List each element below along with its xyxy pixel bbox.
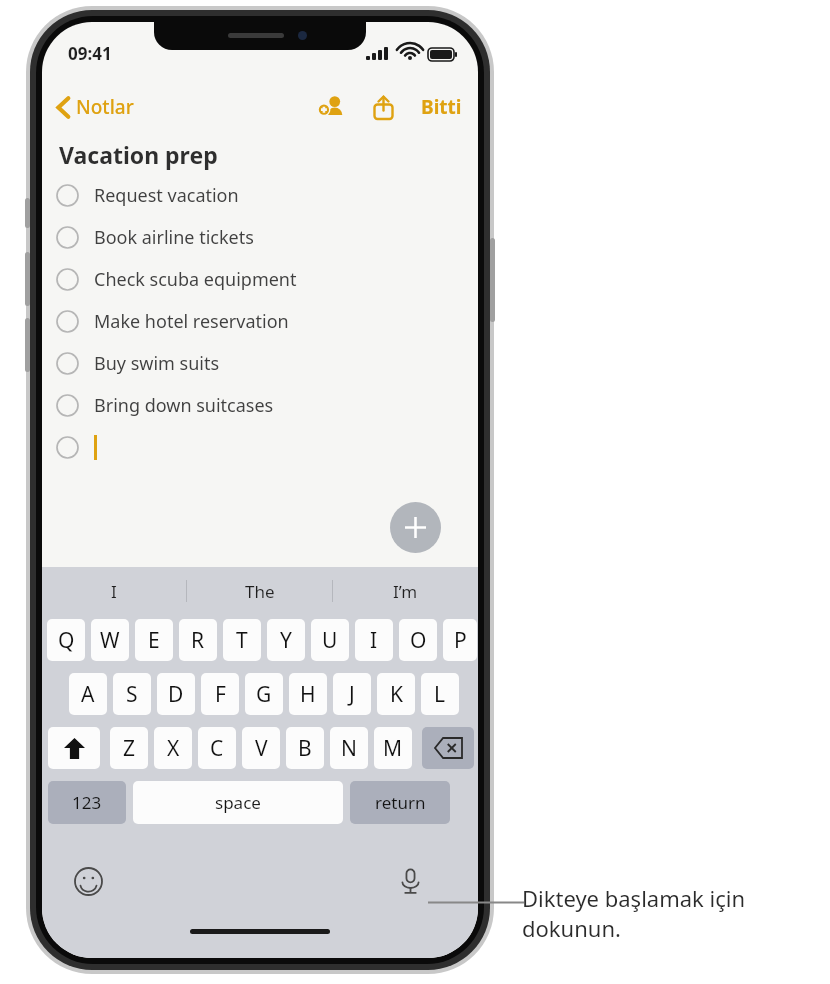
button[interactable]: Z — [110, 727, 148, 769]
staticText: The — [245, 580, 275, 603]
staticText: B — [298, 734, 312, 763]
button[interactable]: F — [201, 673, 239, 715]
button[interactable]: K — [377, 673, 415, 715]
staticText: space — [215, 791, 261, 814]
button[interactable]: Emoji — [68, 861, 108, 901]
button[interactable]: Add people — [309, 86, 353, 128]
staticText: M — [383, 734, 403, 763]
staticText: V — [255, 734, 268, 763]
button[interactable]: Dictation — [390, 861, 430, 901]
button[interactable]: M — [374, 727, 412, 769]
button[interactable]: G — [245, 673, 283, 715]
staticText: C — [210, 734, 224, 763]
staticText: Q — [58, 626, 75, 655]
staticText: X — [167, 734, 180, 763]
button[interactable]: P — [443, 619, 477, 661]
staticText: Request vacation — [94, 183, 239, 208]
button[interactable]: B — [286, 727, 324, 769]
button[interactable]: Book airline tickets — [56, 216, 478, 258]
staticText: 123 — [72, 791, 102, 814]
staticText: S — [126, 680, 138, 709]
button[interactable]: Delete — [422, 727, 474, 769]
staticText: J — [349, 680, 355, 709]
staticText: U — [322, 626, 338, 655]
button[interactable] — [56, 426, 97, 468]
button[interactable]: R — [179, 619, 217, 661]
staticText: R — [191, 626, 205, 655]
button[interactable]: Notlar — [56, 94, 134, 120]
button[interactable]: I’m — [333, 567, 478, 615]
button[interactable]: U — [311, 619, 349, 661]
button[interactable]: C — [198, 727, 236, 769]
staticText: L — [434, 680, 446, 709]
button[interactable]: The — [187, 567, 332, 615]
button[interactable]: S — [113, 673, 151, 715]
staticText: F — [215, 680, 226, 709]
button[interactable]: V — [242, 727, 280, 769]
button[interactable]: O — [399, 619, 437, 661]
staticText: Y — [280, 626, 292, 655]
button[interactable]: space — [133, 781, 343, 824]
staticText: I’m — [393, 580, 418, 603]
staticText: Book airline tickets — [94, 225, 254, 250]
button[interactable]: return — [350, 781, 450, 824]
staticText: A — [81, 680, 95, 709]
staticText: N — [341, 734, 357, 763]
button[interactable]: Request vacation — [56, 174, 478, 216]
button[interactable]: X — [154, 727, 192, 769]
staticText: G — [256, 680, 272, 709]
button[interactable]: E — [135, 619, 173, 661]
staticText: D — [168, 680, 184, 709]
staticText: Bring down suitcases — [94, 393, 274, 418]
staticText: O — [410, 626, 427, 655]
staticText: P — [454, 626, 467, 655]
button[interactable]: T — [223, 619, 261, 661]
staticText: Check scuba equipment — [94, 267, 297, 292]
button[interactable]: J — [333, 673, 371, 715]
button[interactable]: Add — [390, 502, 441, 553]
button[interactable]: Shift — [48, 727, 100, 769]
staticText: E — [148, 626, 160, 655]
button[interactable]: Bring down suitcases — [56, 384, 478, 426]
button[interactable]: H — [289, 673, 327, 715]
staticText: 09:41 — [68, 42, 112, 65]
button[interactable]: Make hotel reservation — [56, 300, 478, 342]
staticText: T — [236, 626, 248, 655]
button[interactable]: 123 — [48, 781, 126, 824]
button[interactable]: Bitti — [421, 94, 462, 120]
staticText: return — [375, 791, 426, 814]
staticText: I — [111, 580, 117, 603]
staticText: Buy swim suits — [94, 351, 220, 376]
button[interactable]: Check scuba equipment — [56, 258, 478, 300]
staticText: Z — [123, 734, 136, 763]
button[interactable]: Share — [361, 86, 405, 128]
staticText: Bitti — [421, 94, 462, 120]
staticText: Make hotel reservation — [94, 309, 289, 334]
button[interactable]: Buy swim suits — [56, 342, 478, 384]
button[interactable]: I — [355, 619, 393, 661]
staticText: Vacation prep — [59, 139, 218, 170]
staticText: W — [100, 626, 120, 655]
button[interactable]: A — [69, 673, 107, 715]
button[interactable]: L — [421, 673, 459, 715]
button[interactable]: Y — [267, 619, 305, 661]
button[interactable]: Q — [47, 619, 85, 661]
staticText: Dikteye başlamak için dokunun. — [522, 883, 746, 944]
staticText: I — [370, 626, 378, 655]
button[interactable]: I — [42, 567, 186, 615]
staticText: H — [300, 680, 316, 709]
button[interactable]: W — [91, 619, 129, 661]
staticText: K — [390, 680, 403, 709]
staticText: Notlar — [76, 94, 134, 120]
button[interactable]: N — [330, 727, 368, 769]
button[interactable]: D — [157, 673, 195, 715]
